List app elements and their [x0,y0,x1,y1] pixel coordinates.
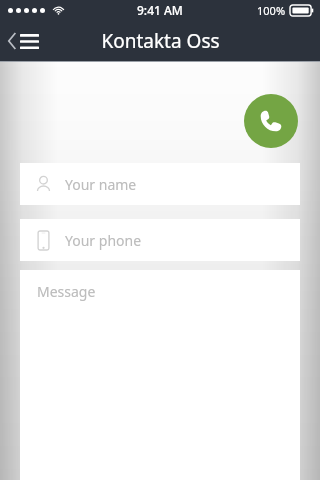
button[interactable]: Your phone [20,219,300,261]
staticText: Your phone [65,231,142,250]
button[interactable]: Your name [20,163,300,205]
staticText: 9:41 AM [137,2,183,18]
button[interactable]: Call us [244,94,298,148]
staticText: Kontakta Oss [101,28,220,54]
button[interactable]: Message [20,270,300,480]
button[interactable]: Back to menu [0,20,49,62]
staticText: 100% [257,3,286,18]
staticText: Your name [65,175,137,194]
staticText: Message [37,282,96,301]
